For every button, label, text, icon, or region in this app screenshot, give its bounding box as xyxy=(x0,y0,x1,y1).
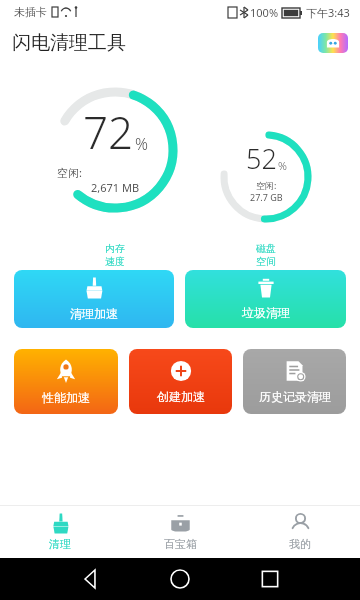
button[interactable]: 垃圾清理 xyxy=(185,270,346,328)
staticText: 创建加速 xyxy=(157,389,205,404)
staticText: 性能加速 xyxy=(42,390,90,405)
button[interactable]: App icon xyxy=(318,33,348,53)
staticText: 下午3:43 xyxy=(306,5,350,20)
staticText: 清理加速 xyxy=(70,306,118,321)
button[interactable]: 清理 xyxy=(0,506,120,558)
staticText: 内存 xyxy=(105,242,125,255)
staticText: 速度 xyxy=(105,255,125,268)
staticText: 垃圾清理 xyxy=(242,305,290,320)
staticText: 2,671 MB xyxy=(91,180,140,195)
staticText: 闪电清理工具 xyxy=(12,31,126,55)
staticText: 我的 xyxy=(289,537,311,551)
staticText: % xyxy=(278,158,287,173)
staticText: 27.7 GB xyxy=(250,191,283,203)
staticText: 52 xyxy=(246,140,277,177)
staticText: 未插卡 xyxy=(14,5,47,19)
staticText: 清理 xyxy=(49,537,71,551)
staticText: 100% xyxy=(250,5,279,20)
staticText: 空间 xyxy=(256,255,276,268)
button[interactable]: 清理加速 xyxy=(14,270,174,328)
staticText: 空闲: xyxy=(256,179,277,191)
staticText: 百宝箱 xyxy=(164,537,197,551)
button[interactable]: 历史记录清理 xyxy=(243,349,346,414)
staticText: % xyxy=(135,133,148,155)
button[interactable]: 我的 xyxy=(240,506,360,558)
button[interactable]: 百宝箱 xyxy=(120,506,240,558)
staticText: 72 xyxy=(83,102,134,162)
button[interactable]: 创建加速 xyxy=(129,349,232,414)
staticText: 空闲: xyxy=(57,165,173,180)
staticText: 磁盘 xyxy=(256,242,276,255)
staticText: 历史记录清理 xyxy=(259,389,331,404)
button[interactable]: 性能加速 xyxy=(14,349,118,414)
